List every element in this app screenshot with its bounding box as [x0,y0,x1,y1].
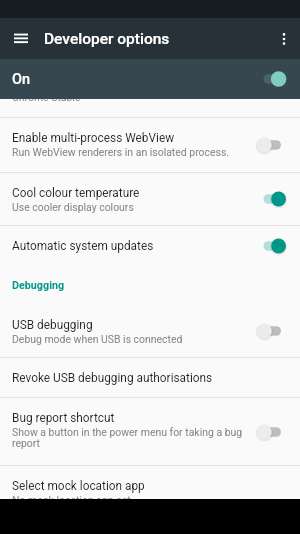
button[interactable]: Select mock location app [0,466,300,499]
staticText: Run WebView renderers in an isolated pro… [12,146,230,158]
staticText: On [12,71,31,88]
button[interactable]: More options [271,26,297,52]
button[interactable]: Enable multi-process WebView [0,118,300,172]
staticText: Bug report shortcut [12,411,115,425]
button[interactable]: USB debugging [0,305,300,357]
button[interactable]: Open navigation drawer [6,24,35,53]
staticText: Select mock location app [12,479,145,493]
staticText: Revoke USB debugging authorisations [12,371,213,385]
staticText: Debugging [12,279,65,292]
staticText: Show a button in the power menu for taki… [12,426,247,450]
staticText: Developer options [44,30,170,48]
button[interactable]: Automatic system updates [0,226,300,265]
staticText: USB debugging [12,318,93,332]
staticText: Debug mode when USB is connected [12,333,183,345]
staticText: No mock location app set [12,494,131,499]
staticText: Chrome Stable [12,99,81,103]
staticText: Enable multi-process WebView [12,131,175,145]
button[interactable]: Bug report shortcut [0,398,300,465]
button[interactable]: On [0,59,300,99]
button[interactable]: Cool colour temperature [0,173,300,225]
staticText: Automatic system updates [12,239,154,253]
staticText: Use cooler display colours [12,201,134,213]
staticText: Cool colour temperature [12,186,140,200]
button[interactable]: Revoke USB debugging authorisations [0,358,300,397]
